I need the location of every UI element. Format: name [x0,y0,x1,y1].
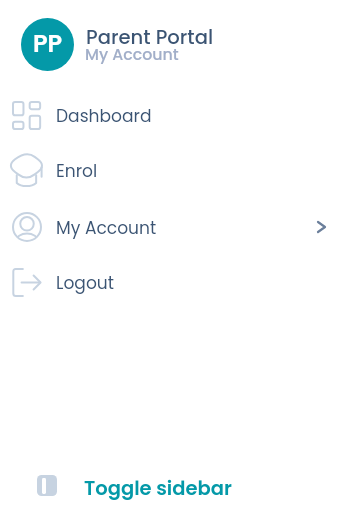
staticText: Logout [56,271,114,295]
staticText: Toggle sidebar [84,475,232,502]
staticText: My Account [56,216,157,240]
button[interactable]: Logout [0,256,339,308]
button[interactable]: Enrol [0,144,339,196]
button[interactable]: Dashboard [0,89,339,141]
staticText: Dashboard [56,104,152,128]
staticText: PP [33,27,63,61]
button[interactable]: Toggle sidebar [0,457,339,513]
staticText: My Account [85,43,179,65]
staticText: Parent Portal [86,23,214,50]
button[interactable]: PP [0,0,339,90]
staticText: Enrol [56,159,98,183]
button[interactable]: My Account [0,201,339,253]
